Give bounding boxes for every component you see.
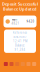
staticText: $420 (26, 20, 34, 23)
button[interactable]: Home (3, 62, 9, 66)
staticText: Balance (15, 44, 25, 47)
button[interactable]: Pay (14, 62, 20, 66)
staticText: $1,284 (14, 48, 25, 51)
button[interactable]: Account (31, 62, 37, 66)
button[interactable]: Cards (9, 62, 14, 66)
staticText: Balance Updated (3, 6, 37, 12)
staticText: 4821 (11, 22, 19, 25)
staticText: TXN-9087 (13, 35, 27, 39)
staticText: Main (11, 18, 17, 21)
button[interactable]: Stats (26, 62, 31, 66)
staticText: 12:41 PM (13, 39, 27, 43)
staticText: Reference (12, 31, 27, 34)
staticText: Deposit Successful (2, 1, 38, 7)
button[interactable]: Offers (20, 62, 26, 66)
